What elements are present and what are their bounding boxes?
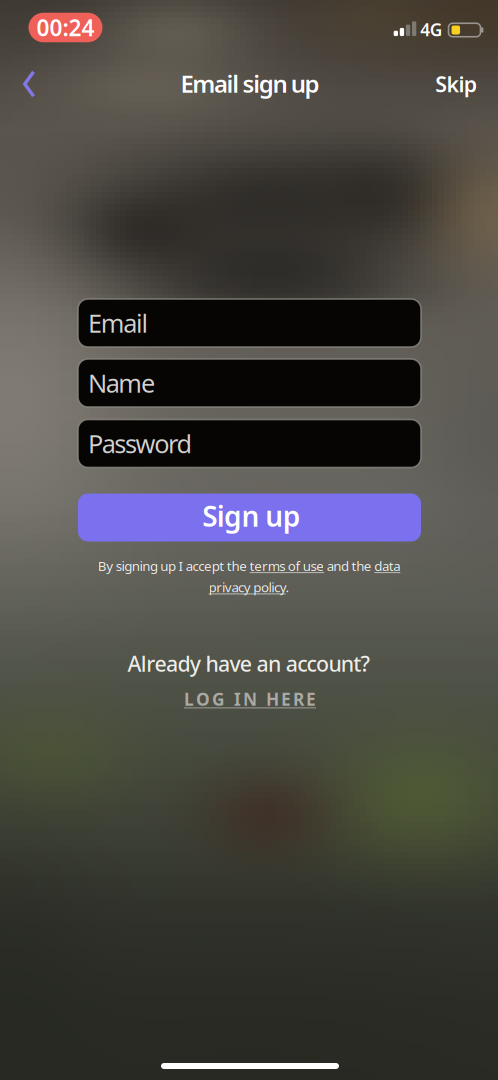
staticText: 00:24 [36,12,94,42]
staticText: Name [88,366,155,400]
staticText: Skip [435,70,477,98]
staticText: By signing up I accept the terms of use … [98,557,400,575]
staticText: Already have an account? [127,649,371,678]
button[interactable]: Name [78,359,421,407]
staticText: privacy policy. [209,578,289,596]
staticText: Sign up [202,497,301,535]
staticText: Password [88,427,193,460]
staticText: 4G [420,18,443,41]
button[interactable]: Sign up [78,493,421,541]
button[interactable]: Stop screen recording [28,13,102,42]
button[interactable]: Back [11,64,47,104]
staticText: Email [88,306,149,340]
button[interactable]: L O G I N H E R E [100,684,400,714]
staticText: Email sign up [181,68,319,99]
staticText: L O G I N H E R E [184,687,316,710]
button[interactable]: Password [78,419,421,467]
button[interactable]: Email [78,299,421,347]
button[interactable]: Skip [428,64,484,104]
button[interactable]: Terms of use and data privacy policy [98,557,400,596]
